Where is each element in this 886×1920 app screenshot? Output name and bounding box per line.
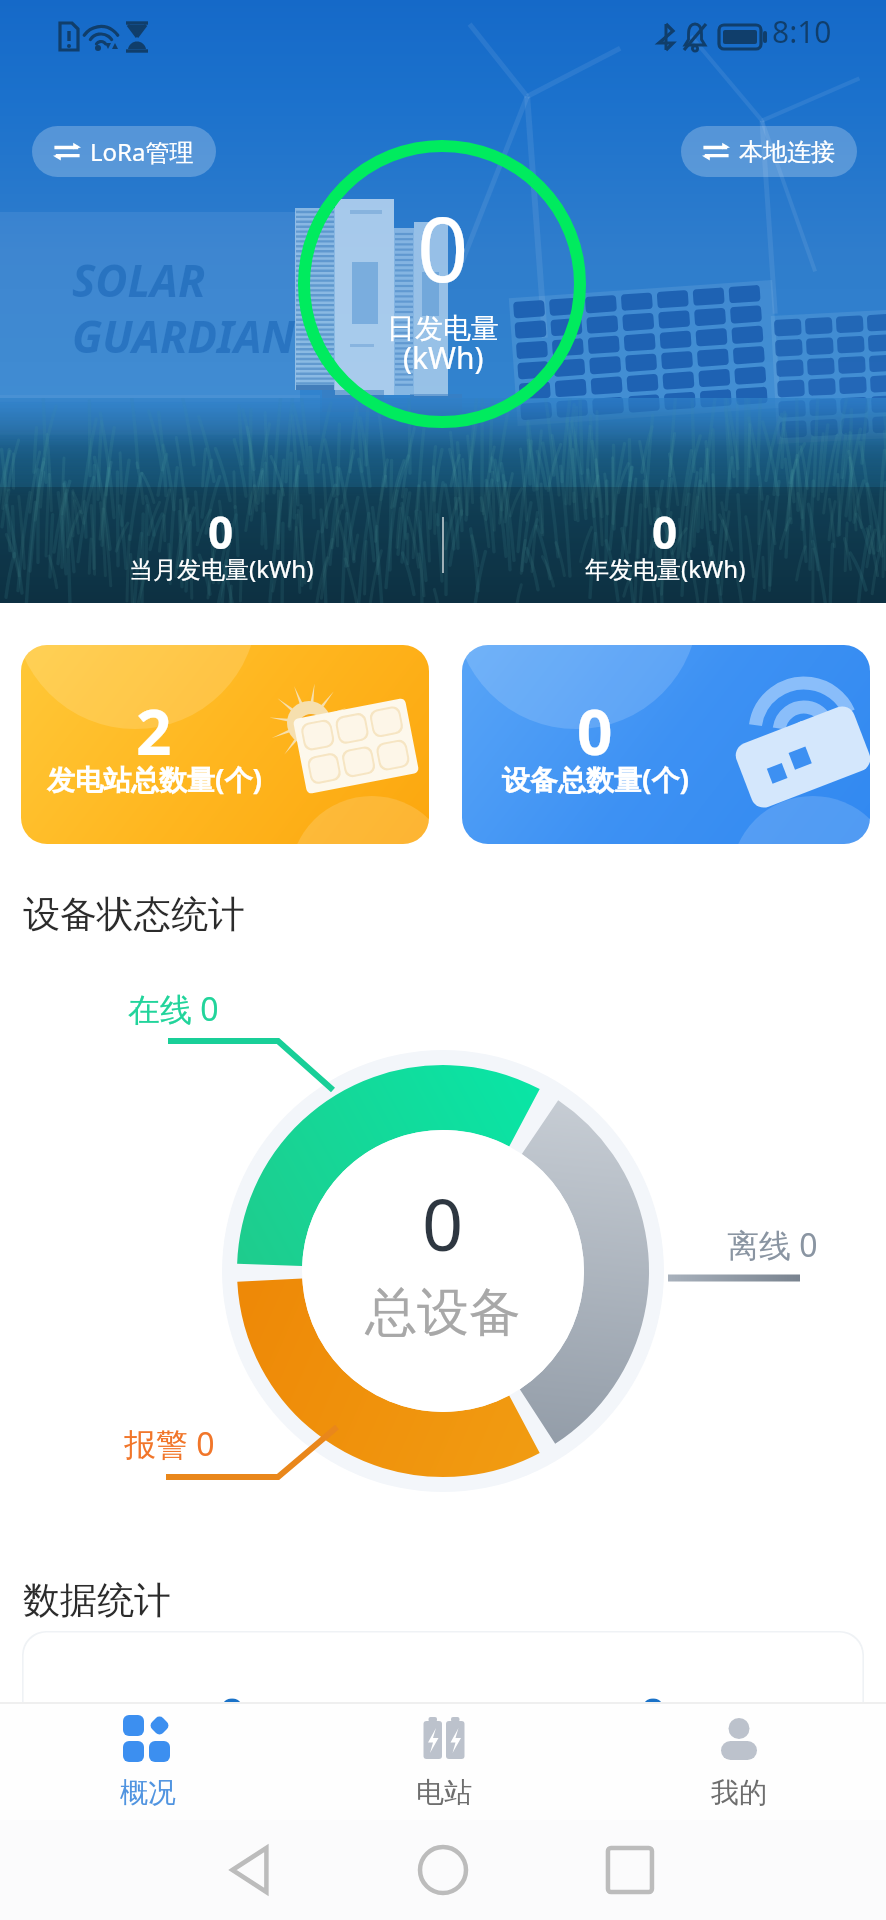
- staticText: 0: [652, 502, 678, 562]
- staticText: 日发电量: [387, 311, 499, 346]
- staticText: 0: [577, 689, 613, 773]
- staticText: 发电站总数量(个): [47, 760, 262, 798]
- staticText: 电站: [416, 1775, 472, 1810]
- button[interactable]: 电站: [296, 1702, 591, 1820]
- staticText: SOLAR GUARDIAN: [72, 250, 295, 366]
- staticText: 数据统计: [23, 1577, 171, 1624]
- staticText: 0: [640, 1683, 667, 1746]
- button[interactable]: 0: [462, 645, 870, 844]
- button[interactable]: 概况: [0, 1702, 296, 1820]
- staticText: 当月发电量(kWh): [129, 552, 314, 585]
- staticText: 0: [422, 1174, 464, 1272]
- button[interactable]: 本地连接: [681, 126, 857, 177]
- staticText: 年发电量(kWh): [585, 552, 746, 585]
- staticText: 0: [417, 186, 469, 309]
- staticText: 概况: [120, 1775, 176, 1810]
- staticText: 8:10: [772, 11, 832, 52]
- staticText: 本地连接: [739, 137, 835, 167]
- staticText: 0: [208, 502, 234, 562]
- staticText: 设备总数量(个): [502, 760, 689, 798]
- staticText: 设备状态统计: [23, 891, 245, 938]
- button[interactable]: 0: [22, 1631, 864, 1821]
- staticText: 在线 0: [128, 987, 219, 1031]
- staticText: 离线 0: [727, 1223, 818, 1267]
- button[interactable]: 2: [21, 645, 429, 844]
- button[interactable]: 我的: [591, 1702, 886, 1820]
- staticText: 0: [219, 1683, 246, 1746]
- button[interactable]: LoRa管理: [32, 126, 216, 177]
- staticText: 总设备: [365, 1280, 521, 1346]
- staticText: 我的: [711, 1775, 767, 1810]
- staticText: (kWh): [403, 337, 484, 378]
- staticText: 2: [136, 689, 172, 773]
- staticText: LoRa管理: [90, 135, 194, 168]
- staticText: 报警 0: [124, 1422, 215, 1466]
